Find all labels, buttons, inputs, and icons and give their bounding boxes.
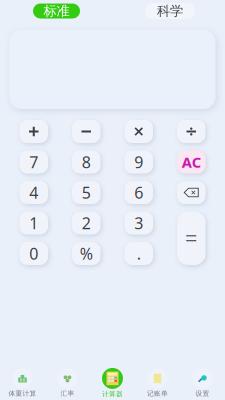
button[interactable]: 5 <box>72 181 100 204</box>
staticText: 科学 <box>157 3 183 19</box>
staticText: 汇率 <box>60 389 74 398</box>
staticText: 4 <box>29 182 38 203</box>
staticText: 6 <box>134 182 143 203</box>
button[interactable]: 设置 <box>180 367 225 399</box>
staticText: AC <box>182 152 201 172</box>
staticText: 标准 <box>43 3 69 19</box>
button[interactable]: % <box>72 242 100 265</box>
button[interactable]: Backspace <box>177 181 205 204</box>
button[interactable]: 科学 <box>145 3 195 19</box>
button[interactable]: 2 <box>72 211 100 234</box>
button[interactable]: 计算器 <box>90 367 135 399</box>
staticText: 7 <box>29 151 38 173</box>
staticText: . <box>137 243 141 264</box>
staticText: 1 <box>29 212 38 234</box>
button[interactable]: Plus <box>19 120 48 143</box>
staticText: % <box>80 243 93 264</box>
button[interactable]: Divide <box>177 120 205 143</box>
button[interactable]: . <box>124 242 153 265</box>
button[interactable]: 汇率 <box>45 367 90 399</box>
staticText: 8 <box>82 151 91 173</box>
button[interactable]: 8 <box>72 150 100 173</box>
button[interactable]: Equals <box>177 211 205 265</box>
staticText: 设置 <box>195 389 209 398</box>
staticText: 0 <box>29 243 38 264</box>
button[interactable]: 9 <box>124 150 153 173</box>
button[interactable]: 标准 <box>33 3 80 18</box>
button[interactable]: 记账单 <box>135 367 180 399</box>
button[interactable]: 3 <box>124 211 153 234</box>
staticText: 2 <box>82 212 91 234</box>
button[interactable]: AC <box>177 150 205 173</box>
button[interactable]: 4 <box>19 181 48 204</box>
button[interactable]: 6 <box>124 181 153 204</box>
button[interactable]: 体重计算 <box>0 367 45 399</box>
button[interactable]: 7 <box>19 150 48 173</box>
staticText: 5 <box>82 182 91 203</box>
staticText: 记账单 <box>147 389 168 398</box>
button[interactable]: 1 <box>19 211 48 234</box>
button[interactable]: Minus <box>72 120 100 143</box>
button[interactable]: Multiply <box>124 120 153 143</box>
staticText: 体重计算 <box>8 389 36 398</box>
staticText: 3 <box>134 212 143 234</box>
button[interactable]: 0 <box>19 242 48 265</box>
staticText: 计算器 <box>102 390 123 398</box>
staticText: 9 <box>134 151 143 173</box>
